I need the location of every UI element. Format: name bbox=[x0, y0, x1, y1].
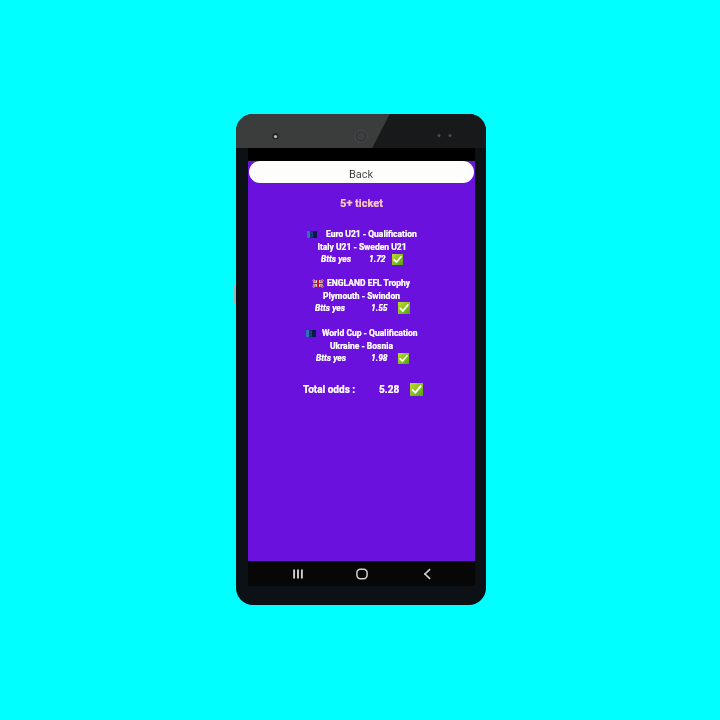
staticText: 1.55 bbox=[371, 303, 388, 313]
button[interactable]: Recent apps bbox=[284, 561, 312, 586]
staticText: 1.72 bbox=[369, 254, 386, 264]
staticText: Back bbox=[349, 168, 374, 181]
button[interactable]: Total odds : bbox=[303, 383, 423, 396]
staticText: 5.28 bbox=[379, 384, 400, 396]
staticText: Ukraine - Bosnia bbox=[330, 341, 393, 351]
staticText: Btts yes bbox=[321, 254, 351, 264]
staticText: Plymouth - Swindon bbox=[323, 291, 400, 301]
staticText: World Cup - Qualification bbox=[322, 328, 418, 338]
button[interactable]: Back bbox=[249, 161, 474, 183]
staticText: 5+ ticket bbox=[340, 197, 383, 210]
staticText: 1.98 bbox=[371, 353, 388, 363]
staticText: Euro U21 - Qualification bbox=[326, 229, 417, 239]
staticText: Btts yes bbox=[315, 303, 345, 313]
button[interactable]: World Cup - Qualification bbox=[248, 327, 475, 364]
staticText: Italy U21 - Sweden U21 bbox=[317, 242, 407, 252]
staticText: ENGLAND EFL Trophy bbox=[327, 278, 411, 288]
button[interactable]: Back bbox=[413, 561, 441, 586]
button[interactable]: Home bbox=[348, 561, 376, 586]
button[interactable]: ENGLAND EFL Trophy bbox=[248, 277, 475, 314]
staticText: Total odds : bbox=[303, 384, 356, 396]
button[interactable]: Euro U21 - Qualification bbox=[248, 228, 475, 265]
staticText: Btts yes bbox=[316, 353, 346, 363]
